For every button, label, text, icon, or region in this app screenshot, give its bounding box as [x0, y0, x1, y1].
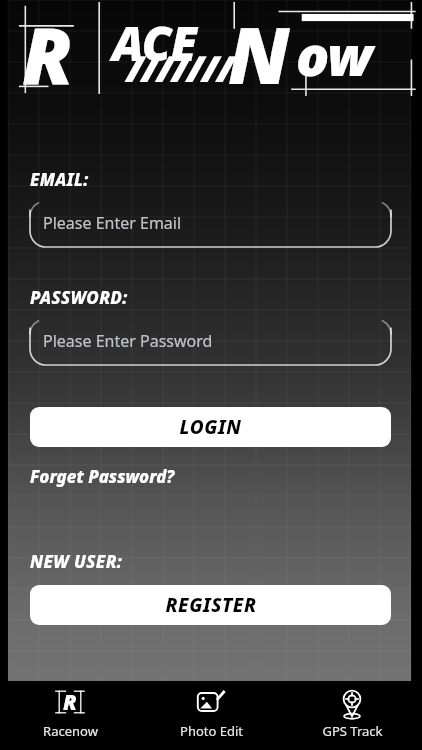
- button[interactable]: GPS Track: [297, 681, 407, 740]
- button[interactable]: REGISTER: [30, 585, 391, 625]
- staticText: REGISTER: [165, 592, 257, 618]
- staticText: Forget Password?: [30, 465, 175, 488]
- staticText: Photo Edit: [180, 722, 243, 740]
- staticText: R: [22, 1, 73, 96]
- staticText: N: [228, 1, 290, 96]
- staticText: Please Enter Email: [43, 212, 182, 234]
- staticText: PASSWORD:: [30, 286, 128, 309]
- staticText: Please Enter Password: [43, 330, 213, 352]
- staticText: Racenow: [43, 722, 98, 740]
- staticText: ow: [296, 17, 372, 92]
- button[interactable]: Photo Edit: [156, 681, 266, 740]
- staticText: R: [63, 688, 77, 717]
- other: Racenow: [55, 687, 85, 717]
- button[interactable]: Racenow: [15, 681, 125, 740]
- button[interactable]: LOGIN: [30, 407, 391, 447]
- staticText: ACE: [112, 11, 196, 75]
- staticText: EMAIL:: [30, 168, 89, 191]
- button[interactable]: Please Enter Email: [30, 201, 391, 247]
- button[interactable]: Please Enter Password: [30, 319, 391, 365]
- other: GPS Track: [337, 687, 367, 717]
- staticText: LOGIN: [179, 414, 242, 440]
- button[interactable]: Forget Password?: [30, 465, 175, 488]
- staticText: GPS Track: [322, 722, 383, 740]
- staticText: NEW USER:: [30, 550, 123, 573]
- other: Photo Edit: [196, 687, 226, 717]
